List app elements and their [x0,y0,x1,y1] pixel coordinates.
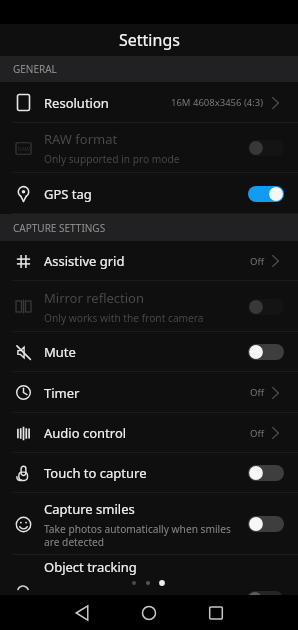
staticText: Settings [119,29,180,51]
staticText: Off [250,386,264,399]
staticText: RAW format [44,130,118,148]
staticText: Only works with the front camera [44,311,204,325]
button[interactable]: Resolution [0,82,298,123]
staticText: Object tracking [44,558,137,576]
staticText: Off [250,427,264,440]
button[interactable]: Mute [0,332,298,372]
staticText: RAW [18,145,30,152]
staticText: Only supported in pro mode [44,152,180,166]
staticText: Touch to capture [44,464,147,482]
staticText: GENERAL [13,62,57,76]
staticText: Capture smiles [44,500,135,518]
staticText: Audio control [44,424,127,442]
staticText: 16M 4608x3456 (4:3) [171,96,264,109]
button[interactable]: Capture smiles [0,493,298,555]
button[interactable]: Back [64,595,100,630]
button[interactable]: RAW [0,123,298,173]
staticText: Mute [44,343,76,361]
staticText: Timer [44,384,80,402]
button[interactable]: Recents [198,595,234,630]
button[interactable]: Home [131,595,167,630]
button[interactable]: Mirror reflection [0,281,298,332]
button[interactable]: Touch to capture [0,453,298,493]
staticText: Mirror reflection [44,289,145,307]
staticText: CAPTURE SETTINGS [13,221,106,235]
staticText: Take photos automatically when smiles ar… [44,522,240,549]
button[interactable]: Assistive grid [0,241,298,281]
button[interactable]: Object tracking [0,555,298,595]
button[interactable]: Audio control [0,413,298,453]
staticText: Off [250,255,264,268]
staticText: Resolution [44,94,109,112]
button[interactable]: Timer [0,372,298,413]
staticText: Assistive grid [44,252,125,270]
staticText: GPS tag [44,185,92,203]
button[interactable]: GPS tag [0,173,298,214]
